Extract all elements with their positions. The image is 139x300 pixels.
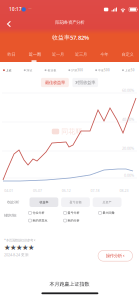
staticText: 0.00% xyxy=(124,173,134,178)
staticText: 60.00% xyxy=(122,88,134,93)
button[interactable]: 中证500 xyxy=(95,68,110,72)
staticText: 10:17 xyxy=(9,6,22,12)
staticText: 辅助功能 xyxy=(4,213,16,217)
button[interactable]: 标的分析 xyxy=(64,219,99,222)
staticText: 收益率 xyxy=(39,200,48,204)
staticText: 收益率57.82% xyxy=(52,33,89,41)
button[interactable]: 仓位分析 xyxy=(29,211,64,215)
staticText: 总资产 xyxy=(103,200,112,204)
button[interactable]: *本页面数据仅供参考 xyxy=(4,238,36,242)
button[interactable]: 上证 xyxy=(3,68,12,72)
staticText: 本月跑赢上证指数 xyxy=(49,281,89,287)
button[interactable]: 近一周 xyxy=(23,46,46,62)
staticText: 08-23 xyxy=(119,188,128,193)
staticText: 今年 xyxy=(100,52,108,57)
staticText: ★★★★★ xyxy=(4,243,34,252)
button[interactable]: 最大回撤 xyxy=(99,211,134,215)
staticText: 昨日 xyxy=(8,52,16,57)
button[interactable]: 总资产 xyxy=(93,197,121,207)
staticText: 近一周 xyxy=(29,52,41,57)
button[interactable]: 对照收益率 xyxy=(72,78,98,87)
staticText: 对照收益率 xyxy=(75,80,95,85)
staticText: 仓位分析 xyxy=(33,211,45,215)
staticText: 同花顺 xyxy=(61,127,82,136)
staticText: 06-12 xyxy=(62,188,71,193)
staticText: ··· xyxy=(28,6,31,11)
button[interactable]: 昨日 xyxy=(0,46,23,62)
staticText: 深证 xyxy=(27,68,33,72)
staticText: 近一月 xyxy=(52,52,64,57)
staticText: 收益分析 xyxy=(7,200,19,204)
staticText: 最大回撤 xyxy=(103,211,115,215)
button[interactable]: 盈亏分析 xyxy=(64,211,99,215)
staticText: 中证500 xyxy=(98,68,110,72)
button[interactable]: 盈亏金额 xyxy=(61,197,90,207)
staticText: 盈亏金额 xyxy=(69,200,81,204)
button[interactable]: 深证 xyxy=(24,68,33,72)
staticText: 操作分析 xyxy=(106,253,122,259)
staticText: 40.00% xyxy=(122,117,134,122)
staticText: 沪深300 xyxy=(71,68,83,72)
button[interactable]: 收益率 xyxy=(29,197,58,207)
staticText: 上证 xyxy=(6,68,12,72)
staticText: 创业板 xyxy=(47,68,56,72)
button[interactable]: 操作分析 xyxy=(98,250,132,261)
staticText: *本页面数据仅供参考 xyxy=(4,238,33,242)
staticText: 20.00% xyxy=(122,146,134,151)
staticText: 阳花峰·资产分析 xyxy=(55,19,84,25)
button[interactable]: 标的买卖点 xyxy=(29,219,64,222)
staticText: 自定义 xyxy=(121,52,133,57)
staticText: 标的买卖点 xyxy=(33,219,48,222)
staticText: 2024-8-24 更新 xyxy=(4,252,29,257)
button[interactable]: 自定义 xyxy=(116,46,139,62)
staticText: 上证50 xyxy=(125,68,135,72)
button[interactable]: 近三月 xyxy=(69,46,93,62)
staticText: 近三月 xyxy=(75,52,87,57)
button[interactable]: 沪深300 xyxy=(68,68,83,72)
staticText: 标的分析 xyxy=(68,219,80,222)
staticText: 04-01 xyxy=(4,188,13,193)
staticText: 最佳收益率 xyxy=(45,80,65,85)
staticText: 07-18 xyxy=(91,188,100,193)
button[interactable]: 近一月 xyxy=(46,46,69,62)
button[interactable]: Back xyxy=(2,17,15,30)
staticText: 盈亏分析 xyxy=(68,211,80,215)
button[interactable]: 创业板 xyxy=(45,68,56,72)
button[interactable]: 最佳收益率 xyxy=(41,78,69,87)
staticText: 05-07 xyxy=(33,188,42,193)
button[interactable]: 上证50 xyxy=(122,68,135,72)
button[interactable]: 今年 xyxy=(93,46,116,62)
